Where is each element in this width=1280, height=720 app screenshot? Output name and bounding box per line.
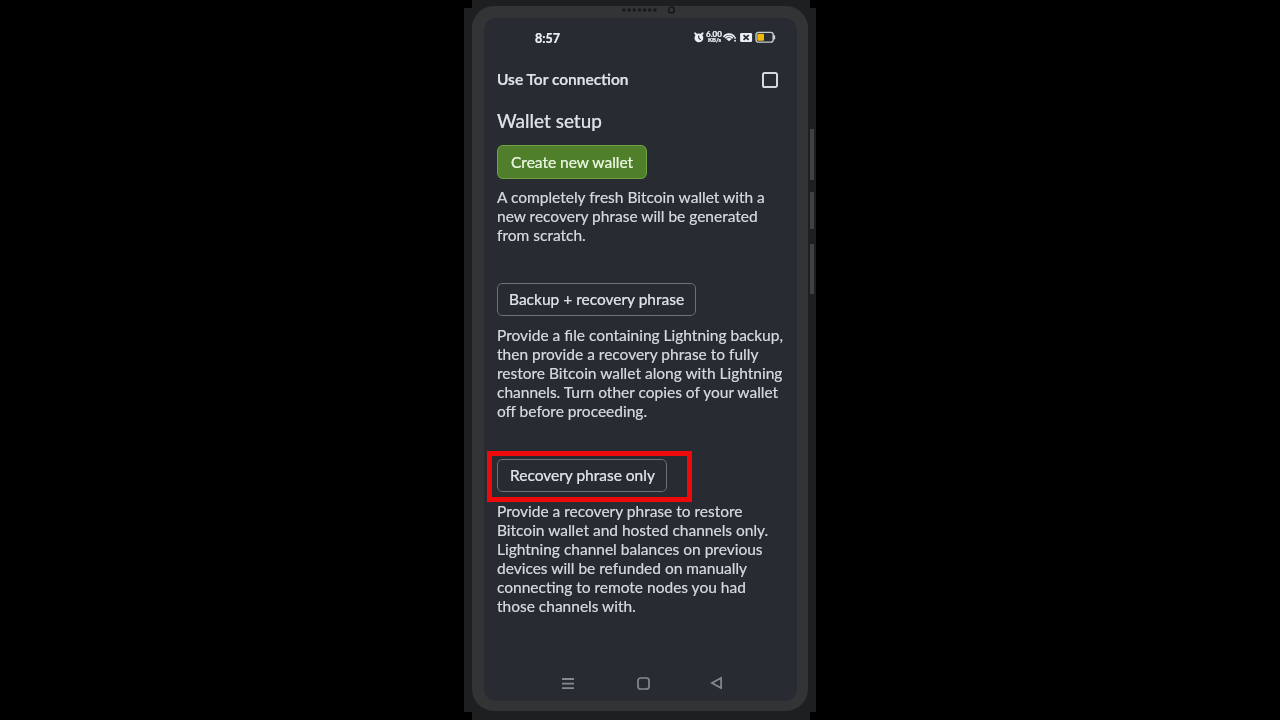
button[interactable]: Use Tor connection: [497, 64, 785, 94]
staticText: 6.00: [706, 29, 722, 39]
staticText: Provide a file containing Lightning back…: [497, 326, 785, 421]
button[interactable]: Recent apps: [550, 666, 586, 700]
button[interactable]: Recovery phrase only: [497, 459, 667, 492]
staticText: Use Tor connection: [497, 70, 629, 89]
staticText: Backup + recovery phrase: [509, 290, 685, 309]
button[interactable]: Backup + recovery phrase: [497, 283, 696, 316]
staticText: Create new wallet: [511, 153, 634, 172]
staticText: 8:57: [535, 31, 560, 46]
button[interactable]: Back: [698, 666, 734, 700]
staticText: KB/s: [708, 36, 722, 43]
staticText: Recovery phrase only: [510, 466, 655, 485]
staticText: Provide a recovery phrase to restore Bit…: [497, 502, 785, 616]
button[interactable]: Home: [625, 666, 661, 700]
staticText: Wallet setup: [497, 109, 602, 132]
button[interactable]: Create new wallet: [497, 145, 647, 179]
staticText: A completely fresh Bitcoin wallet with a…: [497, 188, 785, 245]
